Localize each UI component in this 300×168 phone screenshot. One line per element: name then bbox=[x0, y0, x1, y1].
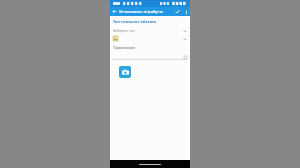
button[interactable]: Выберите тип bbox=[113, 27, 187, 34]
button[interactable]: Home bbox=[139, 164, 161, 165]
staticText: Установить атрибуты bbox=[119, 9, 173, 15]
button[interactable]: Take photo bbox=[119, 66, 131, 78]
button[interactable]: Clear bbox=[113, 54, 187, 60]
button[interactable] bbox=[113, 35, 187, 42]
button[interactable]: More options bbox=[182, 8, 190, 16]
staticText: Тип точечного объекта bbox=[113, 19, 156, 24]
other: Clear bbox=[183, 55, 187, 59]
button[interactable]: Back bbox=[110, 7, 119, 16]
button[interactable]: Save bbox=[173, 7, 182, 16]
staticText: Выберите тип bbox=[113, 29, 135, 33]
staticText: Примечание bbox=[113, 45, 136, 50]
